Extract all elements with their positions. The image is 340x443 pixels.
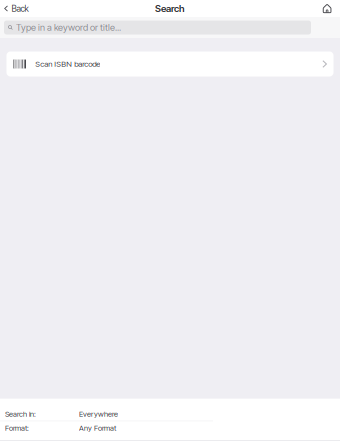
- button[interactable]: Format:: [0, 421, 340, 435]
- staticText: Back: [11, 3, 28, 14]
- button[interactable]: Home: [318, 1, 340, 16]
- staticText: Any Format: [79, 424, 116, 433]
- staticText: Everywhere: [79, 410, 118, 419]
- button[interactable]: Back: [0, 0, 32, 18]
- staticText: Search: [155, 3, 185, 14]
- button[interactable]: Scan ISBN barcode: [6, 51, 333, 76]
- staticText: Format:: [5, 424, 29, 433]
- staticText: Scan ISBN barcode: [35, 59, 100, 69]
- button[interactable]: Search in:: [0, 407, 340, 421]
- button[interactable]: Type in a keyword or title...: [4, 20, 311, 34]
- staticText: Search in:: [5, 410, 36, 419]
- staticText: Type in a keyword or title...: [16, 22, 121, 33]
